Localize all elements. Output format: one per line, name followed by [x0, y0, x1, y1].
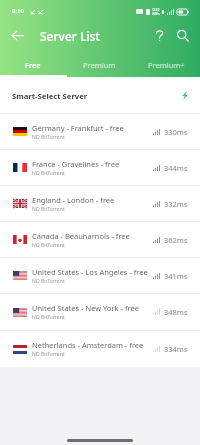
staticText: NO BitTorrent [32, 314, 65, 321]
staticText: Premium [83, 60, 116, 70]
button[interactable]: Help [150, 26, 168, 44]
button[interactable]: England - London - free [0, 186, 200, 221]
button[interactable]: Smart-Select Server [0, 77, 200, 113]
staticText: 344ms [164, 163, 188, 173]
button[interactable]: United States - New York - free [0, 294, 200, 330]
button[interactable]: Back [8, 26, 26, 44]
staticText: France - Gravelines - free [32, 159, 120, 169]
staticText: Premium+ [148, 60, 185, 70]
staticText: Free [25, 60, 41, 70]
staticText: 0.52 KB/s [152, 7, 160, 16]
button[interactable]: Canada - Beauharnois - free [0, 222, 200, 257]
staticText: 362ms [164, 235, 188, 245]
staticText: 330ms [164, 127, 188, 137]
staticText: NO BitTorrent [32, 170, 65, 177]
staticText: NO BitTorrent [32, 206, 65, 213]
button[interactable]: Netherlands - Amsterdam - free [0, 331, 200, 367]
button[interactable]: France - Gravelines - free [0, 150, 200, 185]
staticText: United States - Los Angeles - free [32, 267, 148, 277]
staticText: Smart-Select Server [12, 91, 88, 101]
staticText: Canada - Beauharnois - free [32, 231, 130, 241]
button[interactable]: Premium [66, 51, 133, 77]
staticText: 348ms [164, 307, 188, 317]
button[interactable]: United States - Los Angeles - free [0, 258, 200, 293]
staticText: 332ms [164, 199, 188, 209]
staticText: 341ms [164, 271, 188, 281]
staticText: United States - New York - free [32, 303, 139, 313]
button[interactable]: Germany - Frankfurt - free [0, 114, 200, 149]
staticText: England - London - free [32, 195, 115, 205]
staticText: 334ms [164, 344, 188, 354]
staticText: Server List [40, 28, 101, 44]
staticText: NO BitTorrent [32, 351, 65, 358]
staticText: 9:10 [12, 7, 24, 15]
staticText: NO BitTorrent [32, 242, 65, 249]
button[interactable]: Free [0, 51, 66, 77]
button[interactable]: Premium+ [133, 51, 200, 77]
staticText: Germany - Frankfurt - free [32, 123, 124, 133]
button[interactable]: Search [173, 26, 191, 44]
staticText: Netherlands - Amsterdam - free [32, 340, 144, 350]
staticText: NO BitTorrent [32, 278, 65, 285]
staticText: NO BitTorrent [32, 134, 65, 141]
